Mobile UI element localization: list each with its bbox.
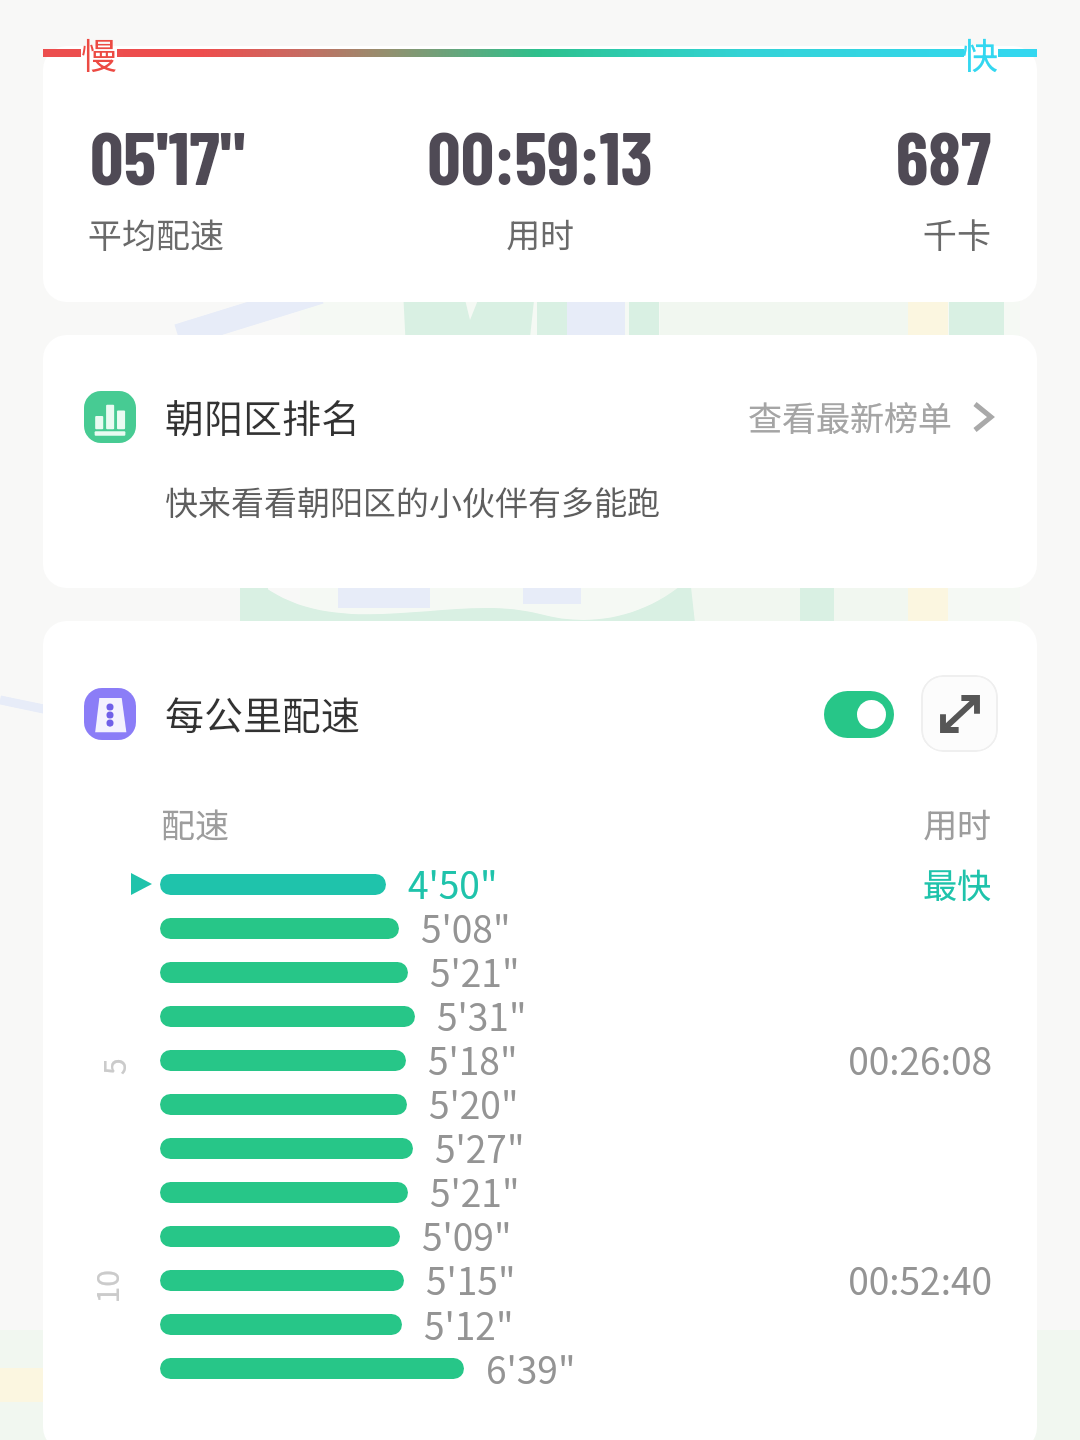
staticText: 5'27": [435, 1120, 835, 1174]
staticText: 千卡: [291, 209, 991, 258]
staticText: 5'21": [430, 1164, 830, 1218]
staticText: 最快: [291, 859, 991, 908]
staticText: 5'08": [421, 900, 821, 954]
staticText: 5'31": [437, 988, 837, 1042]
staticText: 用时: [291, 799, 991, 848]
staticText: 5'18": [428, 1032, 828, 1086]
staticText: 5'15": [426, 1252, 826, 1306]
button[interactable]: 朝阳区排名 查看最新榜单: [43, 335, 1037, 588]
staticText: 用时: [190, 209, 890, 258]
staticText: 687: [471, 111, 991, 200]
staticText: 快: [298, 27, 998, 79]
button[interactable]: 显示每公里配速: [824, 691, 894, 738]
staticText: 05'17": [90, 111, 610, 200]
staticText: 00:52:40: [592, 1252, 992, 1306]
staticText: 00:59:13: [280, 111, 800, 200]
staticText: 5'09": [422, 1208, 822, 1262]
staticText: 5: [91, 1058, 134, 1075]
staticText: 慢: [81, 27, 781, 79]
staticText: 平均配速: [88, 209, 788, 258]
staticText: 配速: [161, 799, 861, 848]
staticText: 5'21": [430, 944, 830, 998]
staticText: 4'50": [408, 856, 808, 910]
staticText: 朝阳区排名: [165, 388, 865, 444]
staticText: 5'12": [424, 1297, 824, 1351]
staticText: 6'39": [486, 1341, 886, 1395]
staticText: 查看最新榜单: [252, 392, 952, 441]
button[interactable]: 全屏显示: [921, 675, 998, 752]
staticText: 5'20": [429, 1076, 829, 1130]
staticText: 00:26:08: [592, 1032, 992, 1086]
staticText: 10: [83, 1269, 126, 1303]
staticText: 快来看看朝阳区的小伙伴有多能跑: [165, 477, 865, 525]
staticText: 每公里配速: [165, 685, 865, 741]
